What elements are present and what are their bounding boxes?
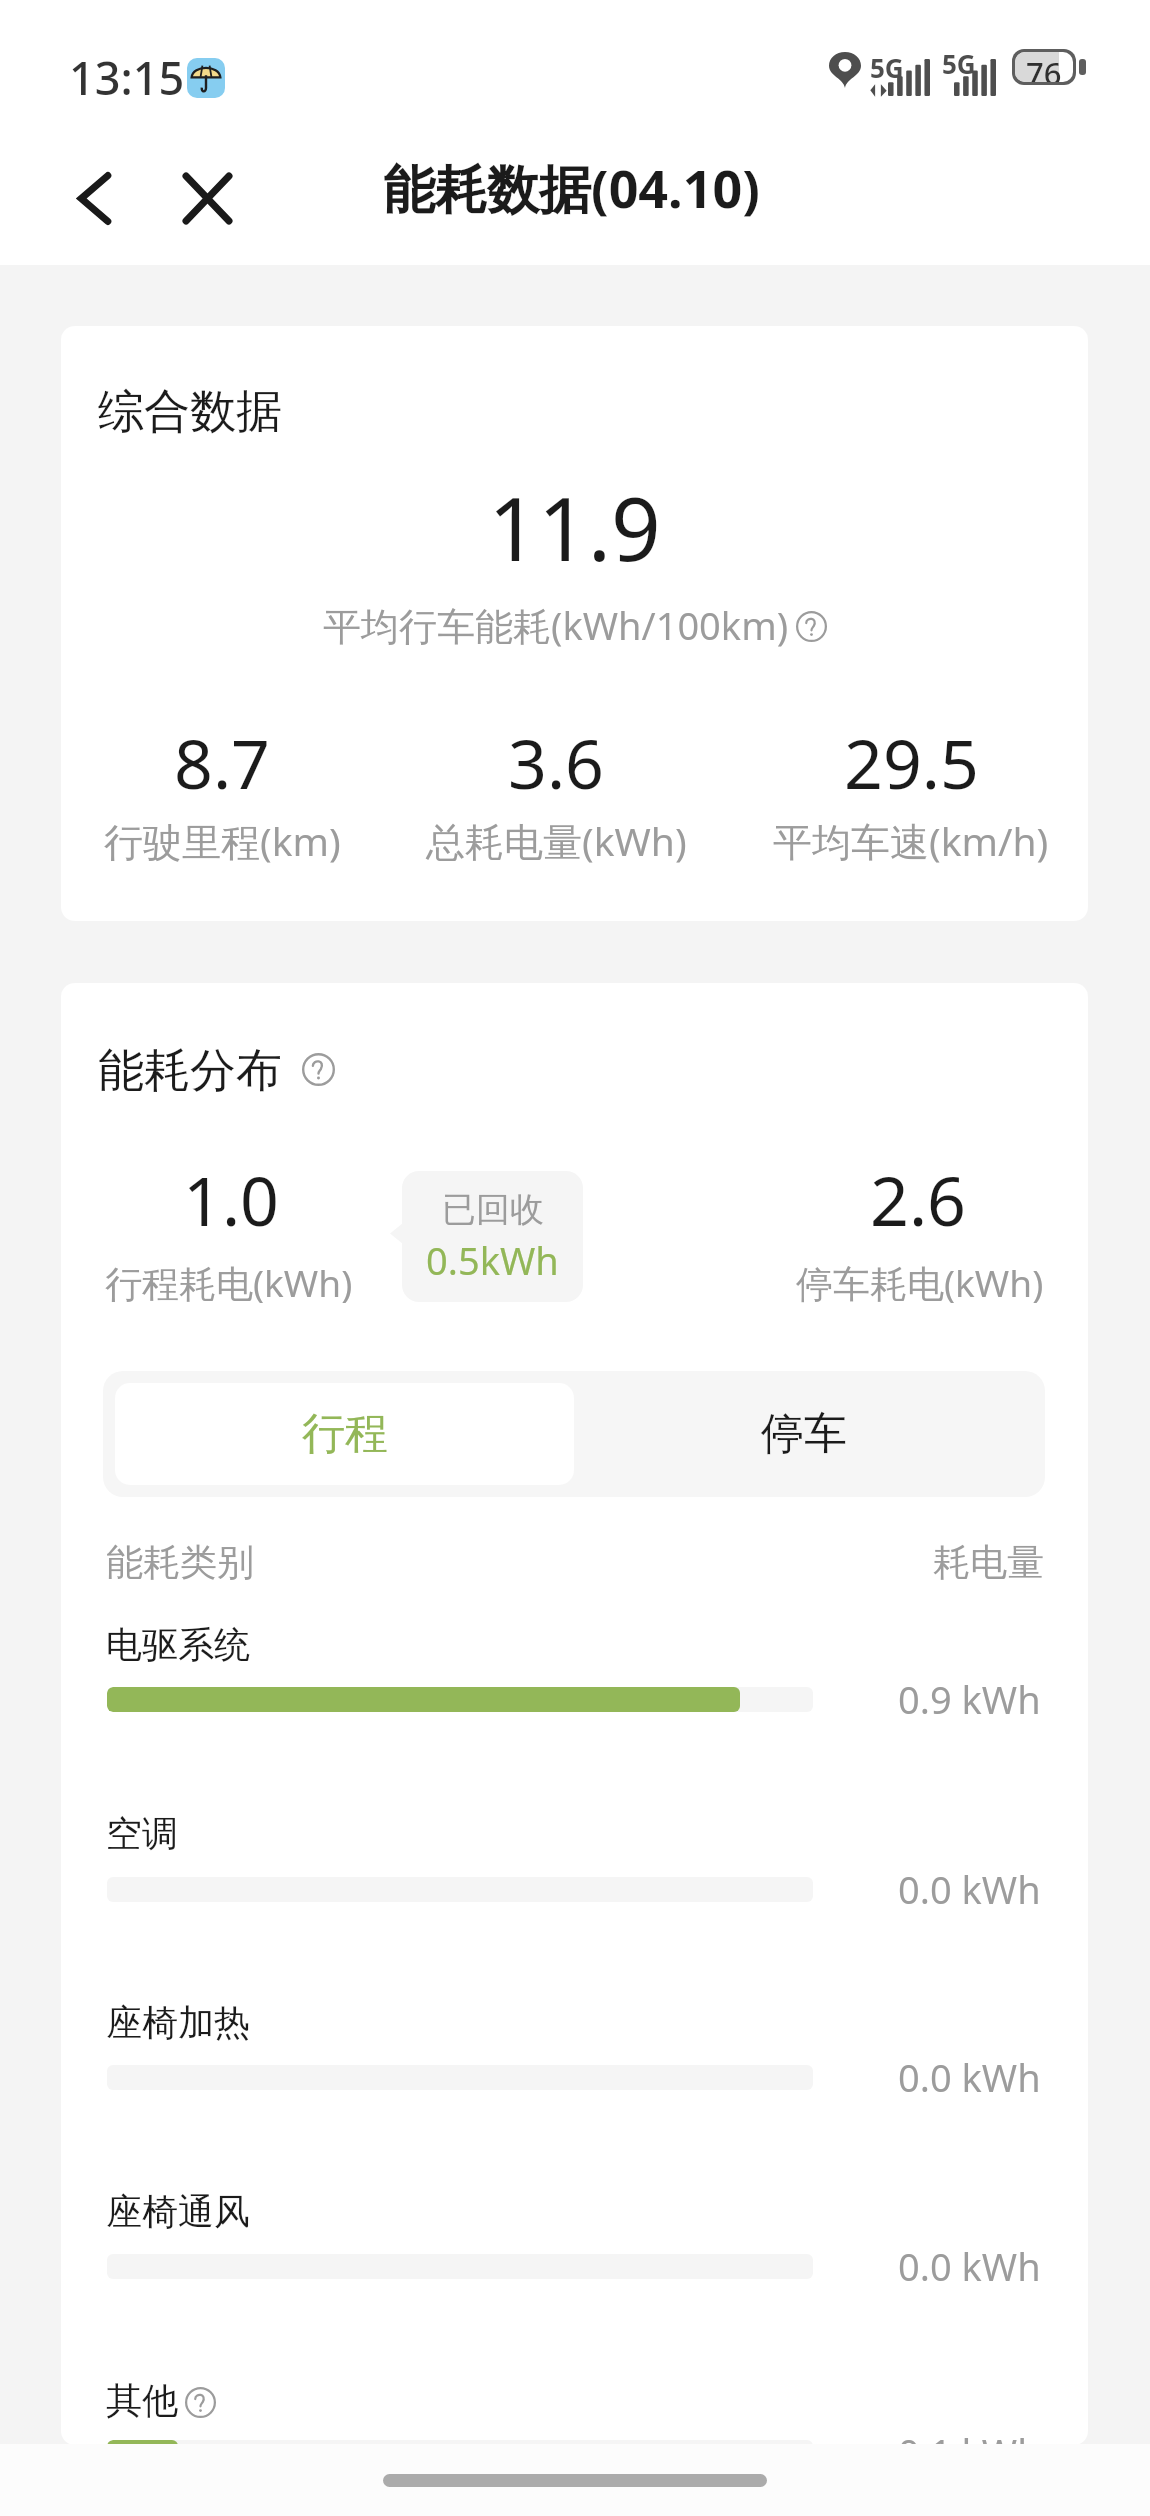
staticText: 5G: [870, 50, 904, 85]
staticText: 3.6: [508, 716, 605, 809]
staticText: 0.5kWh: [426, 1234, 559, 1286]
button[interactable]: Help: [302, 1053, 335, 1086]
staticText: 行程: [302, 1407, 388, 1461]
button[interactable]: 停车: [574, 1383, 1033, 1485]
staticText: 耗电量: [933, 1539, 1044, 1586]
staticText: 76: [1026, 52, 1062, 82]
staticText: 停车耗电(kWh): [796, 1257, 1044, 1308]
staticText: 29.5: [844, 716, 979, 809]
staticText: 11.9: [61, 468, 1088, 586]
staticText: 座椅通风: [106, 2189, 250, 2234]
staticText: 13:15: [69, 47, 185, 108]
button[interactable]: Back: [37, 132, 152, 265]
staticText: 1.0: [183, 1153, 280, 1246]
staticText: 0.0 kWh: [898, 1863, 1041, 1915]
staticText: 总耗电量(kWh): [426, 814, 687, 867]
staticText: 行程耗电(kWh): [105, 1257, 353, 1308]
staticText: 座椅加热: [106, 2000, 250, 2045]
staticText: 能耗分布: [98, 1042, 282, 1100]
staticText: 行驶里程(km): [104, 814, 341, 867]
staticText: 综合数据: [98, 383, 282, 441]
staticText: 0.1 kWh: [898, 2426, 1041, 2445]
staticText: 已回收: [442, 1188, 544, 1231]
staticText: 8.7: [174, 716, 271, 809]
staticText: 平均行车能耗(kWh/100km): [323, 599, 789, 651]
button[interactable]: Help: [796, 611, 827, 642]
staticText: 平均车速(km/h): [773, 814, 1049, 867]
staticText: 空调: [106, 1811, 178, 1856]
button[interactable]: 行程: [115, 1383, 574, 1485]
staticText: 停车: [761, 1407, 847, 1461]
staticText: 能耗类别: [106, 1539, 254, 1586]
staticText: 0.0 kWh: [898, 2051, 1041, 2103]
button[interactable]: Close: [154, 132, 261, 265]
staticText: 0.0 kWh: [898, 2240, 1041, 2292]
button[interactable]: Help: [185, 2387, 216, 2418]
staticText: 0.9 kWh: [898, 1673, 1041, 1725]
staticText: 电驱系统: [106, 1622, 250, 1667]
staticText: 其他: [106, 2378, 178, 2423]
staticText: 5G: [942, 46, 976, 81]
staticText: 2.6: [870, 1153, 967, 1246]
staticText: 能耗数据(04.10): [383, 152, 760, 223]
